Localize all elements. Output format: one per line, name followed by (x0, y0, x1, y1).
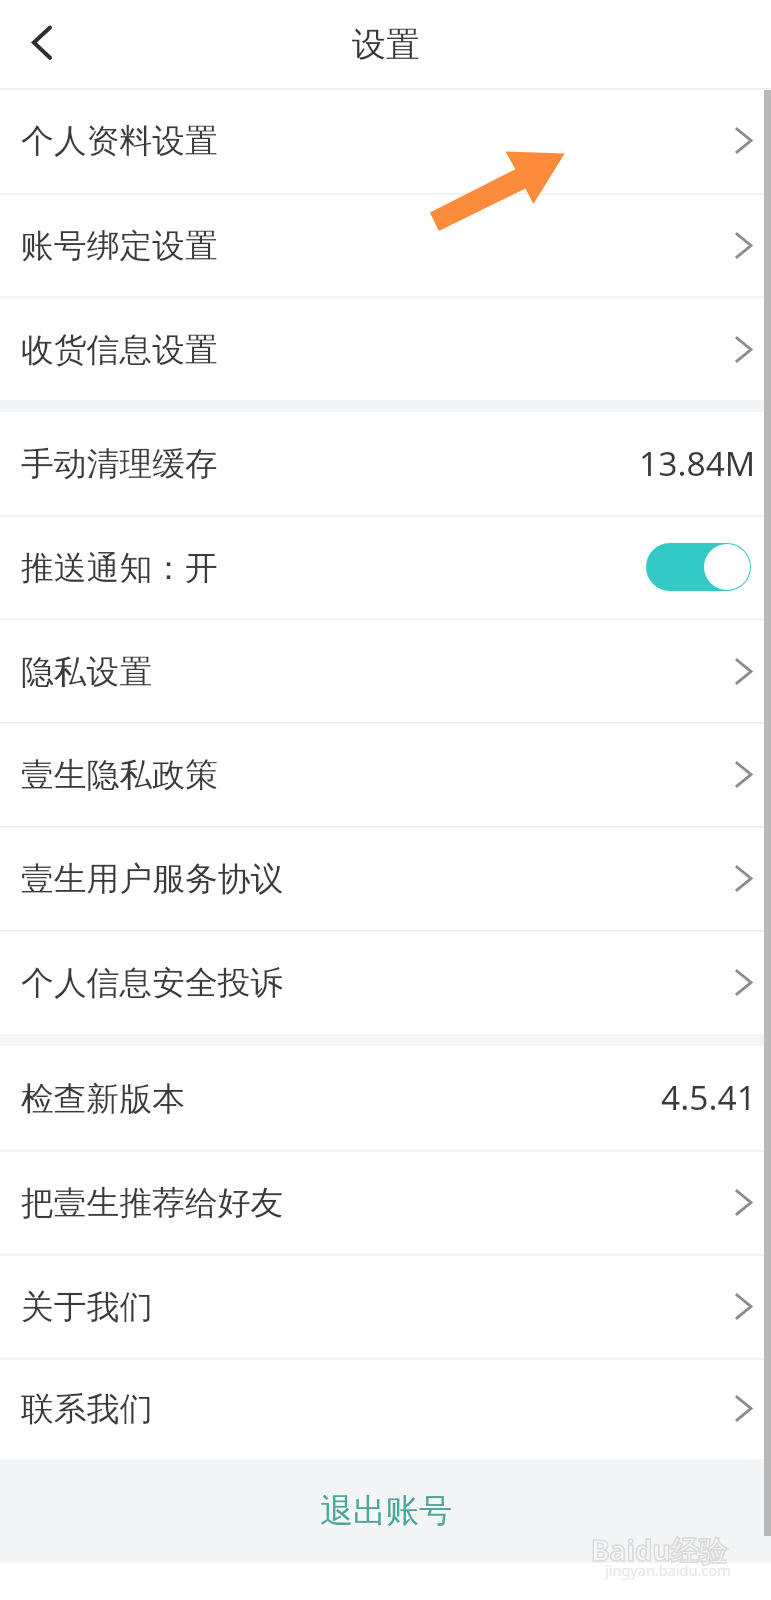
staticText: 把壹生推荐给好友 (21, 1182, 284, 1223)
button[interactable]: 壹生隐私政策 (0, 722, 771, 826)
staticText: 壹生隐私政策 (21, 754, 218, 795)
button[interactable]: 账号绑定设置 (0, 193, 771, 297)
staticText: 推送通知：开 (21, 547, 218, 588)
button[interactable]: Back (9, 11, 75, 77)
staticText: 4.5.41 (661, 1074, 756, 1120)
staticText: 关于我们 (21, 1286, 153, 1327)
staticText: 个人资料设置 (21, 120, 218, 161)
staticText: 检查新版本 (21, 1078, 185, 1119)
button[interactable]: 把壹生推荐给好友 (0, 1150, 771, 1254)
button[interactable]: 手动清理缓存 (0, 412, 771, 515)
button[interactable]: Push notifications toggle, on (646, 543, 751, 591)
button[interactable]: 收货信息设置 (0, 297, 771, 401)
staticText: 联系我们 (21, 1388, 153, 1429)
staticText: jingyan.baidu.com (605, 1560, 731, 1580)
button[interactable]: 关于我们 (0, 1254, 771, 1358)
staticText: 收货信息设置 (21, 329, 218, 370)
button[interactable]: 退出账号 (0, 1459, 771, 1563)
button[interactable]: 隐私设置 (0, 619, 771, 723)
staticText: 退出账号 (320, 1490, 452, 1532)
staticText: 手动清理缓存 (21, 443, 218, 484)
staticText: 账号绑定设置 (21, 225, 218, 266)
button[interactable]: 推送通知：开 (0, 515, 771, 619)
button[interactable]: 检查新版本 (0, 1046, 771, 1150)
staticText: 隐私设置 (21, 651, 153, 692)
staticText: 个人信息安全投诉 (21, 962, 284, 1003)
staticText: 设置 (352, 23, 420, 66)
button[interactable]: 个人资料设置 (0, 88, 771, 193)
button[interactable]: 联系我们 (0, 1358, 771, 1459)
staticText: Baidu经验 (591, 1531, 727, 1569)
button[interactable]: 壹生用户服务协议 (0, 826, 771, 930)
staticText: 壹生用户服务协议 (21, 858, 284, 899)
staticText: 13.84M (639, 440, 756, 486)
button[interactable]: 个人信息安全投诉 (0, 930, 771, 1034)
